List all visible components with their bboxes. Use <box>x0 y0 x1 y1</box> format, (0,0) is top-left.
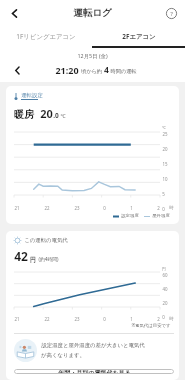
staticText: 円 <box>30 256 36 263</box>
staticText: 15 <box>162 161 168 167</box>
staticText: ℃ <box>60 112 66 119</box>
button[interactable]: 2Fエアコン <box>92 25 185 48</box>
staticText: 42 <box>14 248 28 264</box>
button[interactable]: Back <box>4 3 24 23</box>
staticText: 4 <box>104 64 109 76</box>
staticText: 頃から約 <box>81 68 102 75</box>
staticText: 0 <box>162 206 165 211</box>
staticText: 22 <box>44 205 50 211</box>
staticText: 20 <box>162 300 168 306</box>
staticText: 設定温度 <box>121 213 139 219</box>
staticText: 0 <box>103 205 106 211</box>
staticText: 21 <box>14 205 20 211</box>
button[interactable]: Previous day <box>10 63 24 77</box>
staticText: が高くなります。 <box>41 352 85 359</box>
staticText: 設定温度と屋外温度の差が大きいと電気代 <box>41 342 145 349</box>
staticText: 21 <box>14 316 20 322</box>
staticText: 21:20 <box>55 64 79 76</box>
staticText: .0 <box>53 111 59 120</box>
staticText: 1Fリビングエアコン <box>16 32 76 41</box>
staticText: 10 <box>162 176 168 182</box>
staticText: 1 <box>130 205 133 211</box>
staticText: 0 <box>162 314 165 320</box>
staticText: 運転ログ <box>73 7 112 19</box>
staticText: 1 <box>130 316 133 322</box>
staticText: 0 <box>103 316 106 322</box>
staticText: 年間・月別の電気代を見る <box>58 369 131 374</box>
staticText: 20 <box>162 146 168 152</box>
staticText: 時 <box>169 316 174 322</box>
staticText: この運転の電気代 <box>24 237 68 244</box>
staticText: 屋外温度 <box>152 213 170 219</box>
staticText: 23 <box>74 316 80 322</box>
staticText: ※電気代は目安です <box>131 322 171 328</box>
staticText: 25 <box>162 131 168 137</box>
staticText: 円 <box>162 266 166 271</box>
staticText: 40 <box>162 286 168 292</box>
staticText: 5 <box>162 191 165 197</box>
staticText: ℃ <box>162 125 166 130</box>
button[interactable]: Help <box>162 4 180 22</box>
staticText: 60 <box>162 272 168 278</box>
staticText: ? <box>170 10 173 18</box>
staticText: 運転設定 <box>21 92 43 99</box>
staticText: 2 <box>157 316 160 322</box>
button[interactable]: 年間・月別の電気代を見る <box>14 369 174 374</box>
staticText: 2Fエアコン <box>122 32 156 41</box>
staticText: (約4時間) <box>38 256 59 263</box>
staticText: 時間の運転 <box>110 68 137 75</box>
staticText: 20 <box>40 106 53 121</box>
staticText: 22 <box>44 316 50 322</box>
staticText: 12月5日 (金) <box>77 52 108 59</box>
staticText: 暖房 <box>14 108 34 121</box>
staticText: 23 <box>74 205 80 211</box>
button[interactable]: 運転設定 <box>14 92 43 100</box>
staticText: 2 <box>157 205 160 211</box>
button[interactable]: 1Fリビングエアコン <box>0 25 92 48</box>
staticText: 時 <box>169 205 174 211</box>
